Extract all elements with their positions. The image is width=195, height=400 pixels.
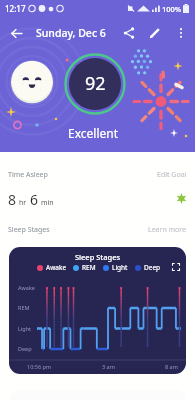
staticText: Edit Goal xyxy=(157,170,187,180)
staticText: hr xyxy=(19,198,27,208)
staticText: Time Asleep xyxy=(8,170,48,180)
button[interactable]: Edit Goal xyxy=(157,170,187,180)
staticText: 3 am xyxy=(102,363,115,370)
staticText: Awake xyxy=(18,284,35,291)
staticText: Awake xyxy=(46,263,67,272)
staticText: Light xyxy=(112,263,128,272)
staticText: 100% xyxy=(162,4,182,14)
staticText: 10:56 pm xyxy=(27,363,52,370)
staticText: Learn more xyxy=(148,225,187,235)
staticText: min xyxy=(41,198,54,208)
button[interactable]: More options xyxy=(168,20,194,46)
staticText: 6 xyxy=(30,190,39,209)
staticText: REM xyxy=(82,263,96,272)
button[interactable]: Learn more xyxy=(148,225,187,235)
staticText: Sunday, Dec 6 xyxy=(36,26,106,40)
staticText: Sleep Stages xyxy=(9,252,186,262)
staticText: Deep xyxy=(18,345,32,352)
button[interactable]: Share xyxy=(116,20,142,46)
staticText: 92 xyxy=(85,71,106,96)
staticText: 12:17 xyxy=(5,3,26,14)
button[interactable]: Back xyxy=(0,17,32,49)
button[interactable]: Expand chart xyxy=(170,261,182,273)
staticText: Light xyxy=(18,325,32,332)
staticText: REM xyxy=(18,304,30,311)
staticText: 8 am xyxy=(165,363,178,370)
staticText: Deep xyxy=(144,263,161,272)
staticText: 8 xyxy=(8,190,17,209)
staticText: Excellent xyxy=(68,125,119,141)
staticText: Sleep Stages xyxy=(8,225,50,235)
button[interactable]: Edit xyxy=(142,20,168,46)
